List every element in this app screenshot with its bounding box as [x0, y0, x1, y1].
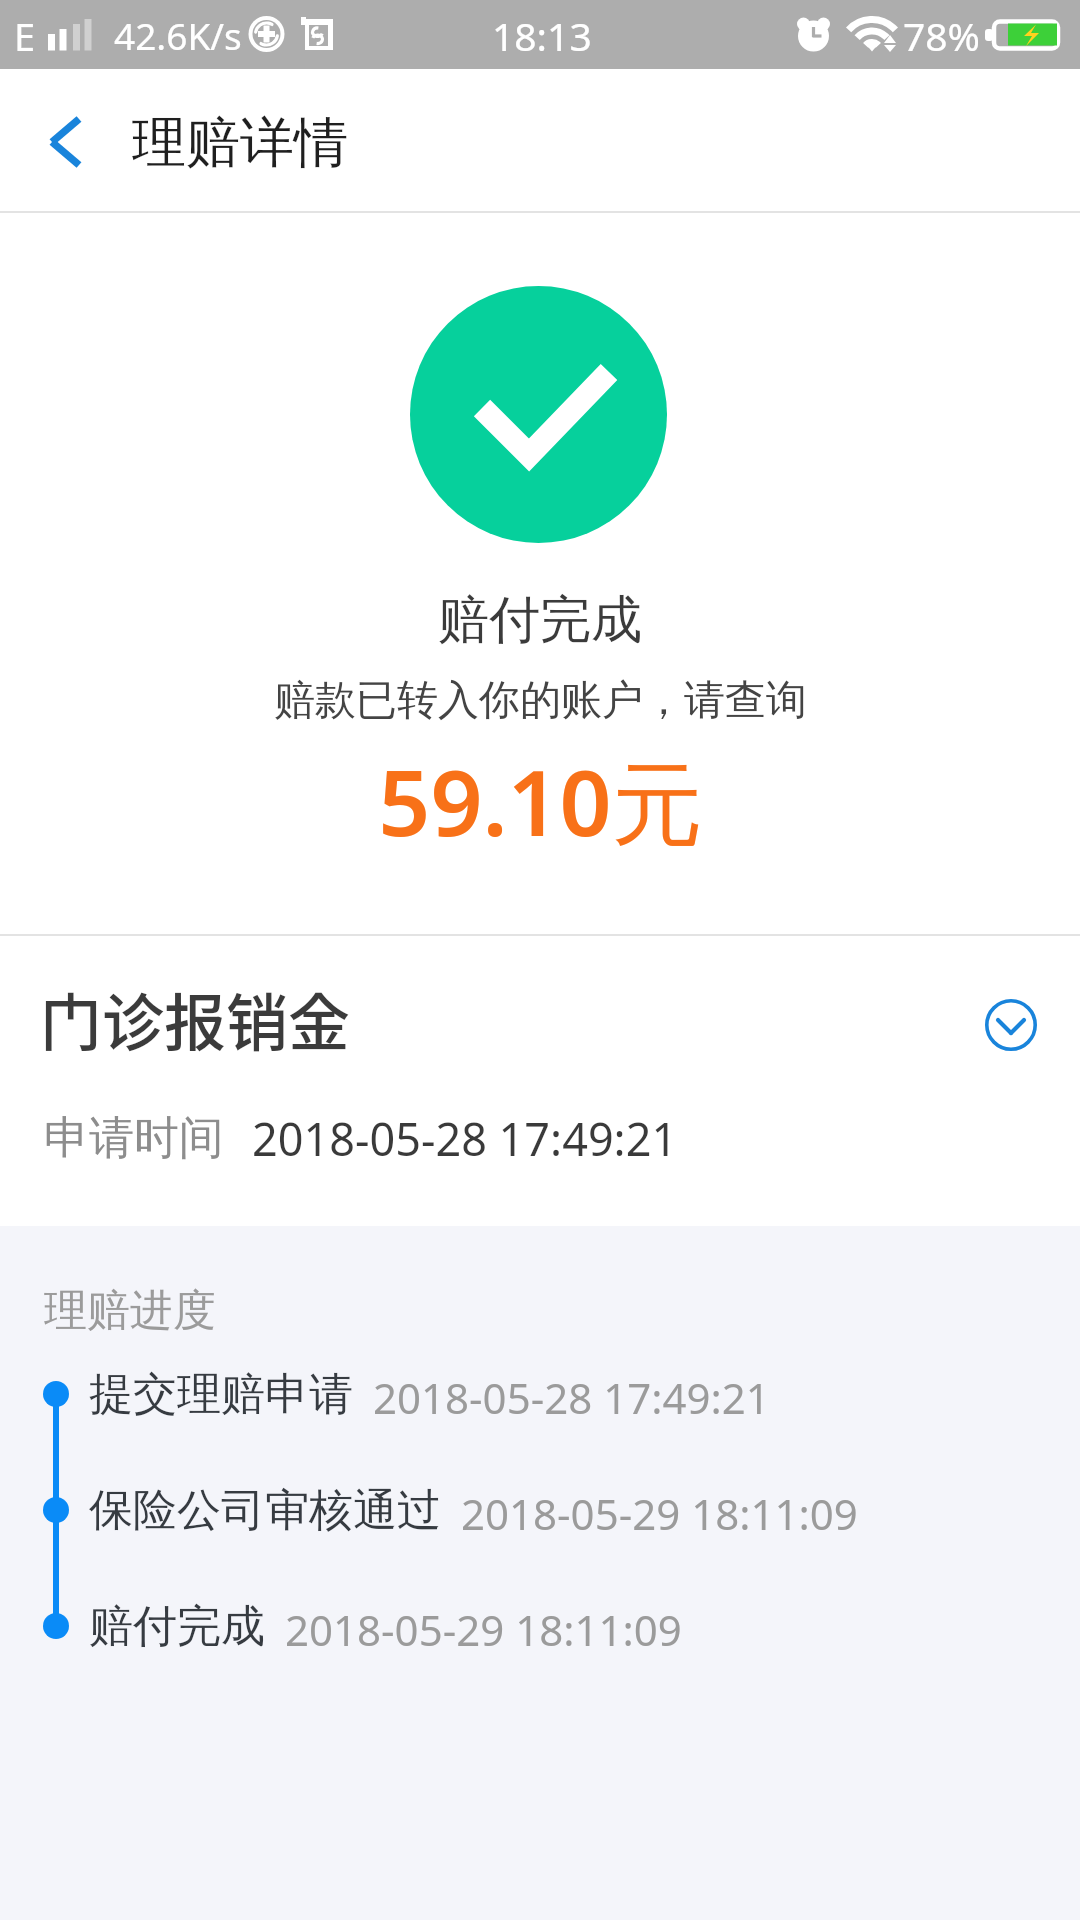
staticText: 78%: [903, 9, 981, 62]
staticText: 2018-05-29 18:11:09: [285, 1601, 682, 1658]
button[interactable]: Expand details: [975, 989, 1047, 1061]
staticText: 理赔进度: [44, 1284, 216, 1338]
staticText: 2018-05-29 18:11:09: [461, 1485, 858, 1542]
staticText: 2018-05-28 17:49:21: [252, 1108, 678, 1169]
staticText: 59.10元: [378, 739, 703, 863]
staticText: 理赔详情: [132, 109, 348, 177]
staticText: E: [14, 10, 36, 62]
staticText: 赔付完成: [438, 588, 642, 652]
staticText: 42.6K/s: [114, 10, 242, 60]
staticText: 申请时间: [44, 1110, 224, 1167]
staticText: 赔付完成: [89, 1599, 265, 1654]
staticText: 保险公司审核通过: [89, 1483, 441, 1538]
staticText: 提交理赔申请: [89, 1367, 353, 1422]
staticText: 赔款已转入你的账户，请查询: [274, 675, 807, 727]
staticText: 18:13: [492, 9, 592, 62]
button[interactable]: 门诊报销金: [0, 936, 1080, 1226]
button[interactable]: Back: [0, 69, 120, 213]
staticText: 2018-05-28 17:49:21: [373, 1369, 770, 1426]
staticText: 门诊报销金: [40, 974, 351, 1064]
